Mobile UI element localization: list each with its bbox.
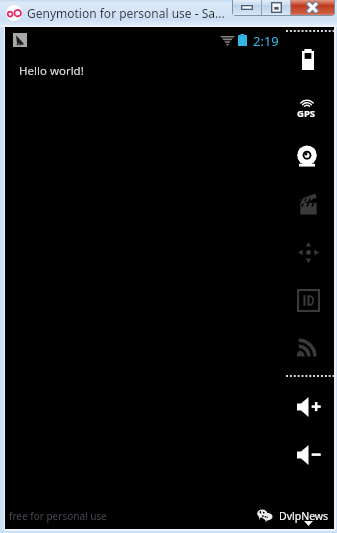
staticText: Genymotion for personal use - Sa... [27,5,225,21]
button[interactable]: Camera [297,145,317,167]
button[interactable]: Volume down [297,445,321,465]
button[interactable]: Identifiers [297,289,320,312]
staticText: DvlpNews [279,509,329,523]
staticText: Hello world! [19,63,84,79]
button[interactable]: Volume up [297,397,321,417]
button[interactable]: Rotate [298,242,319,263]
button[interactable]: GPS [300,97,314,106]
staticText: free for personal use [9,509,107,523]
button[interactable]: Maximize [262,0,290,15]
staticText: GPS [297,107,316,120]
button[interactable]: Screen recording [300,193,317,215]
button[interactable]: Close [291,0,334,15]
button[interactable]: Battery [302,49,314,70]
staticText: 2:19 [253,32,279,50]
button[interactable]: Network [297,337,317,357]
button[interactable]: Minimize [233,0,261,15]
